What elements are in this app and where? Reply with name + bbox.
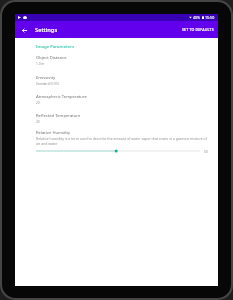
staticText: Relative humidity is a term used to desc… [36, 136, 209, 146]
staticText: Object Distance [36, 55, 67, 61]
staticText: 40% [193, 15, 201, 20]
button[interactable]: Atmospheric Temperature [15, 94, 218, 105]
button[interactable]: Reflected Temperature [15, 113, 218, 124]
button[interactable]: Relative humidity slider [36, 146, 200, 156]
staticText: Reflected Temperature [36, 113, 81, 119]
staticText: Emissivity [36, 75, 56, 81]
button[interactable]: Emissivity [15, 75, 218, 86]
staticText: Image Parameters [36, 43, 75, 49]
staticText: Settings [35, 26, 58, 34]
staticText: Relative Humidity [36, 130, 71, 136]
staticText: Atmospheric Temperature [36, 94, 87, 100]
staticText: 20 [36, 120, 40, 124]
button[interactable]: SET TO DEFAULTS [178, 23, 218, 36]
button[interactable]: Relative Humidity [15, 130, 218, 146]
staticText: Standard (0.95) [36, 82, 59, 86]
staticText: SET TO DEFAULTS [182, 27, 214, 32]
staticText: 20 [36, 101, 40, 105]
staticText: 15:50 [205, 15, 215, 20]
staticText: 1.0 m [36, 62, 45, 66]
button[interactable]: Object Distance [15, 55, 218, 66]
button[interactable]: Back [18, 24, 30, 36]
staticText: 50 [204, 149, 208, 154]
